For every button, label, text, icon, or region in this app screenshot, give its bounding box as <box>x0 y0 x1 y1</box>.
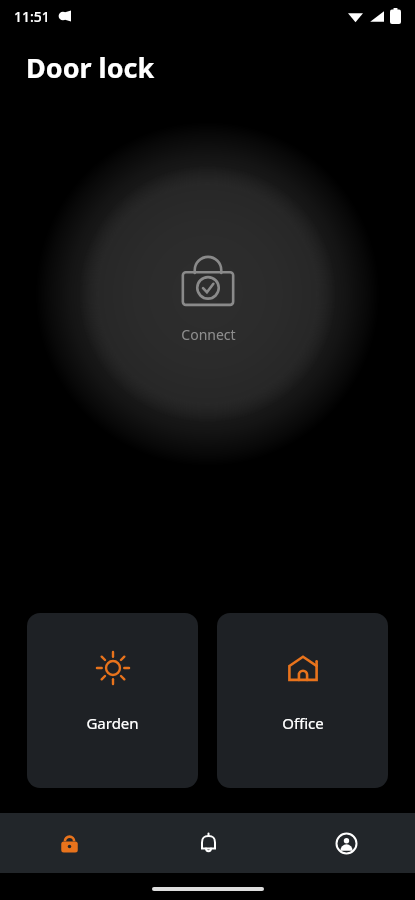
button[interactable]: Garden <box>27 613 198 788</box>
staticText: 11:51 <box>14 7 50 26</box>
staticText: Office <box>282 713 324 733</box>
button[interactable]: Notifications <box>139 813 277 873</box>
staticText: Connect <box>181 325 236 344</box>
button[interactable]: Connect <box>144 233 272 356</box>
button[interactable]: Lock <box>0 813 139 873</box>
staticText: Door lock <box>26 49 155 86</box>
staticText: Garden <box>86 713 139 733</box>
button[interactable]: Profile <box>277 813 415 873</box>
button[interactable]: Office <box>217 613 388 788</box>
